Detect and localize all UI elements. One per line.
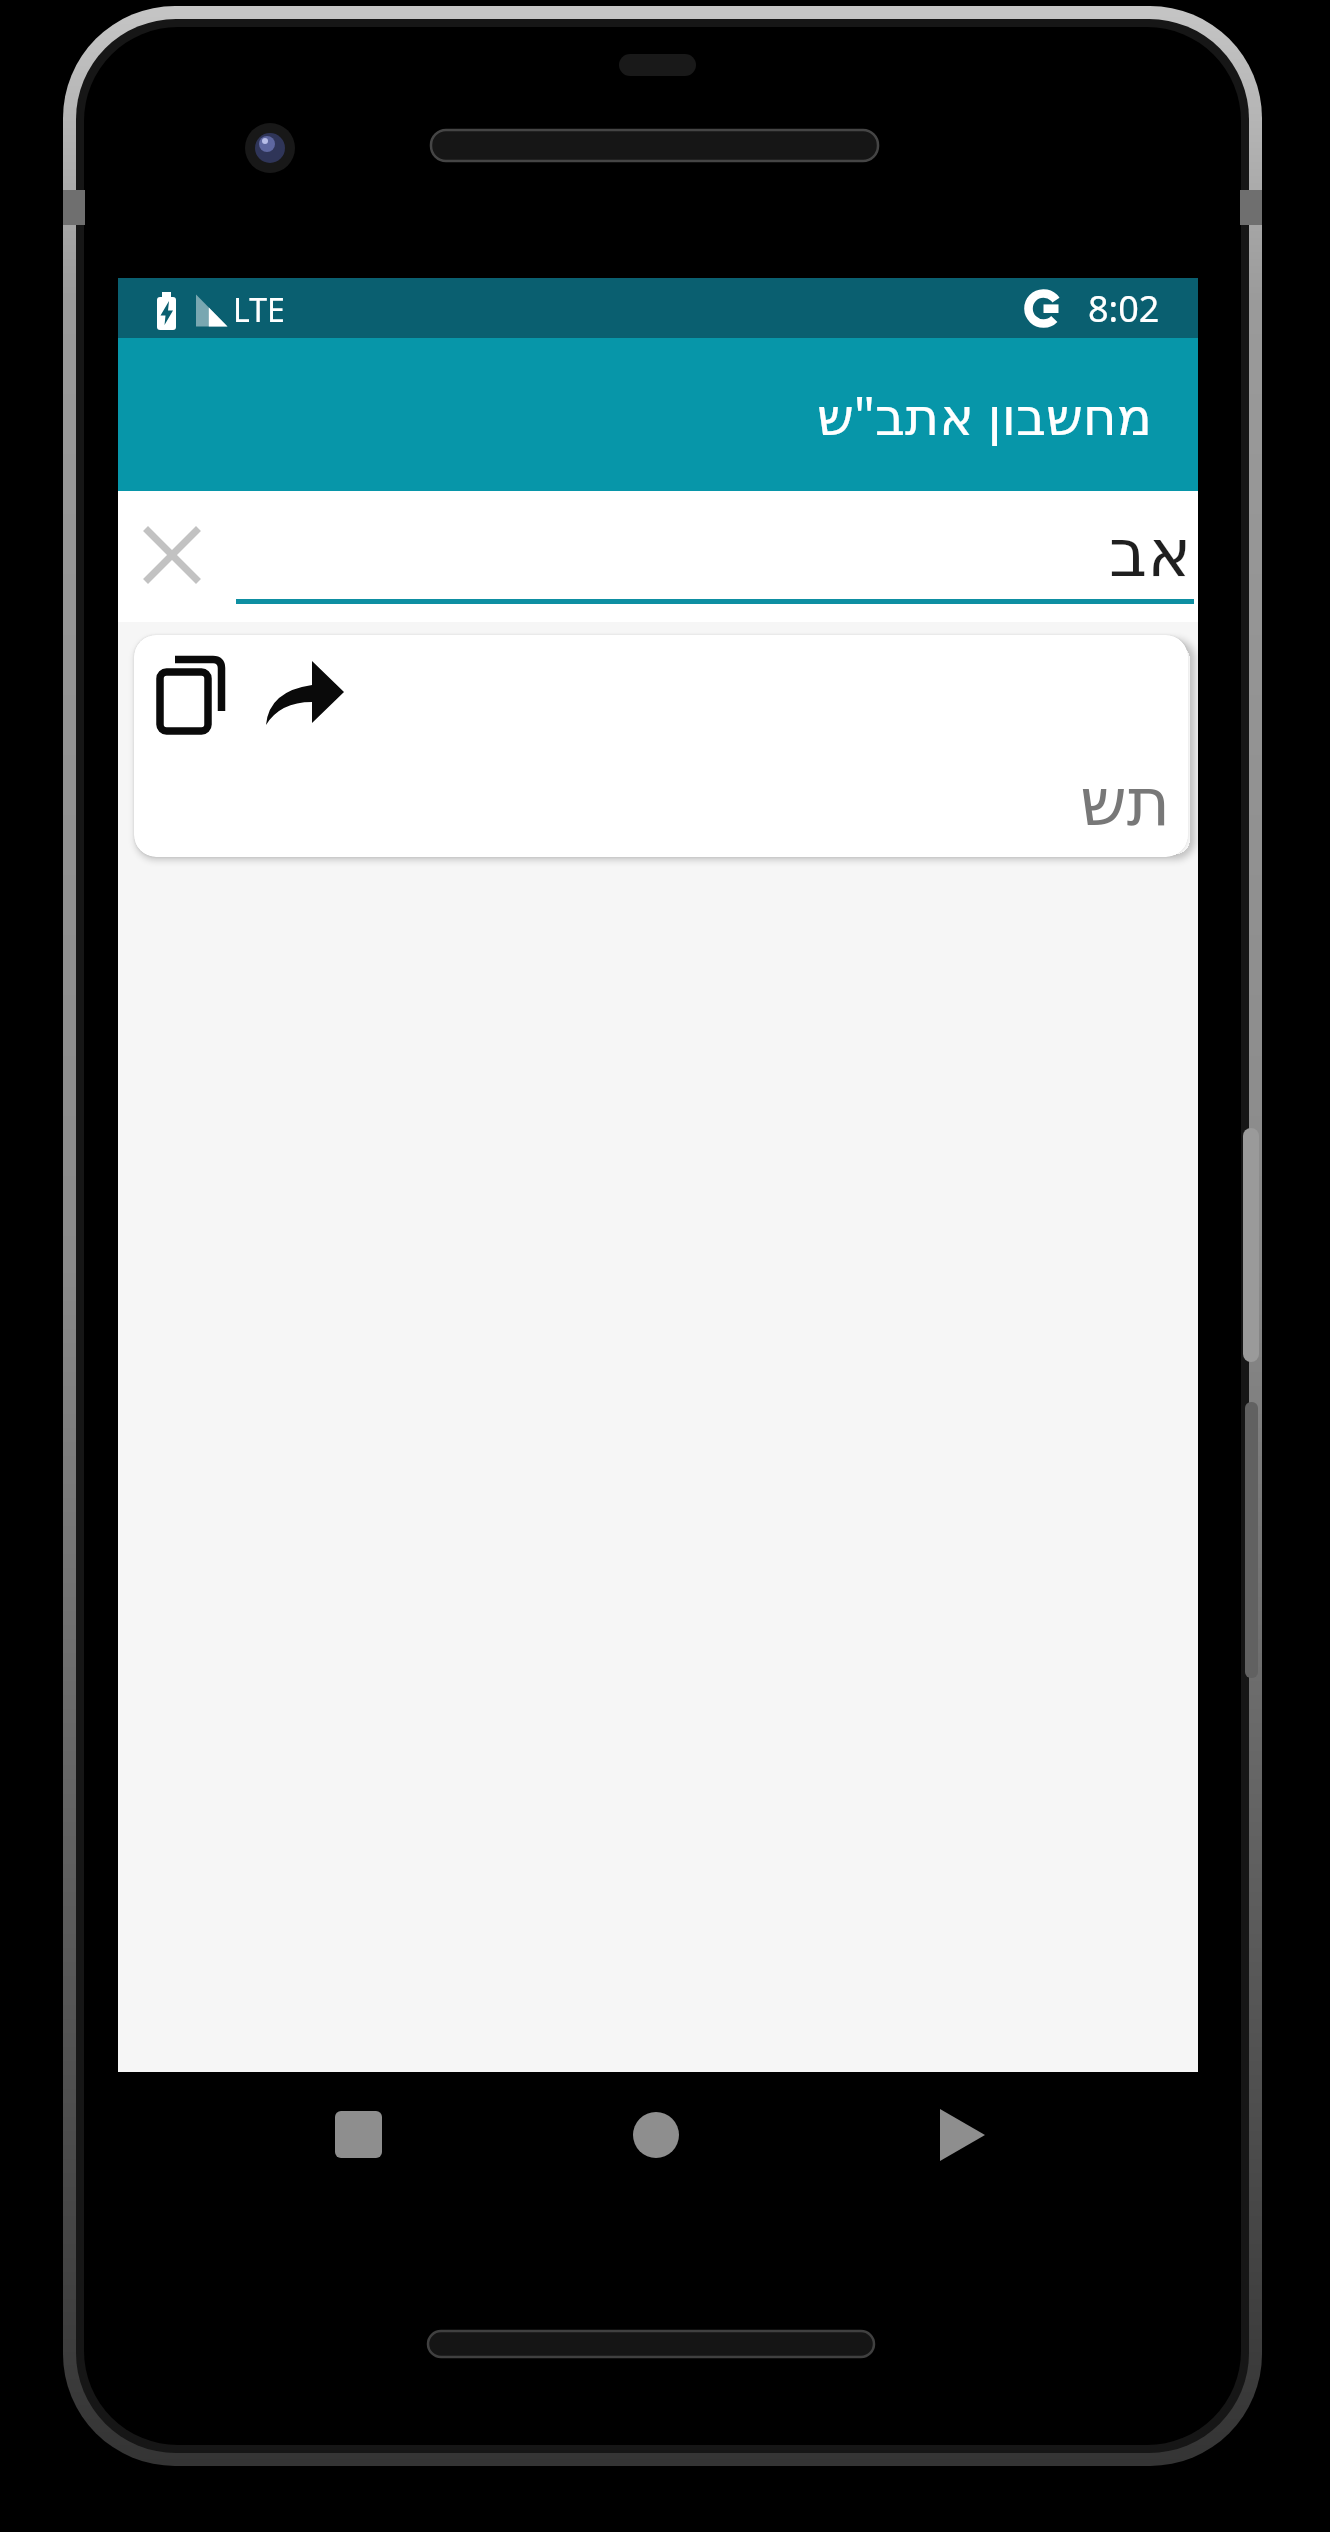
button[interactable] [146,529,198,581]
staticText: מחשבון אתב"ש [817,379,1153,450]
button[interactable] [258,649,348,739]
button[interactable] [145,645,233,733]
staticText: LTE [233,288,285,332]
staticText: תש [1080,764,1171,841]
button[interactable]: תש [134,635,1188,857]
staticText: 8:02 [1088,284,1160,333]
staticText: אב [1109,515,1192,592]
